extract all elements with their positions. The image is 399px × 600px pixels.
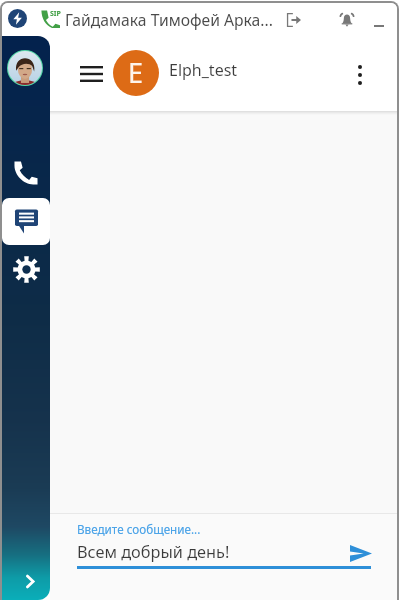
button[interactable]: Notifications — [334, 7, 360, 33]
button[interactable]: More options — [343, 60, 377, 90]
staticText: Гайдамака Тимофей Арка... — [65, 9, 273, 30]
staticText: SIP — [50, 9, 61, 19]
button[interactable]: Profile — [8, 51, 42, 85]
button[interactable]: Menu — [74, 61, 108, 87]
staticText: Elph_test — [169, 59, 238, 81]
button[interactable]: Chats — [2, 198, 50, 245]
button[interactable]: SIP status — [41, 9, 60, 28]
button[interactable]: Settings — [2, 246, 50, 292]
button[interactable]: Expand sidebar — [6, 561, 50, 600]
staticText: E — [128, 54, 144, 91]
button[interactable]: Minimize — [367, 7, 391, 31]
staticText: Всем добрый день! — [77, 541, 230, 563]
button[interactable]: Calls — [2, 150, 50, 196]
button[interactable]: Logout — [281, 7, 307, 33]
button[interactable]: Contact avatar — [113, 50, 159, 96]
button[interactable]: Send — [345, 539, 377, 567]
staticText: Введите сообщение... — [77, 521, 201, 537]
button[interactable]: App logo — [8, 9, 27, 28]
